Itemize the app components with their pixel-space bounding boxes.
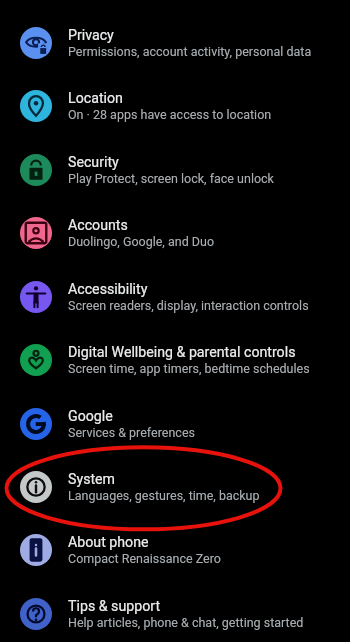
staticText: Location bbox=[68, 90, 123, 107]
staticText: System bbox=[68, 471, 116, 488]
button[interactable]: System bbox=[0, 455, 350, 519]
button[interactable]: Digital Wellbeing & parental controls bbox=[0, 328, 350, 392]
staticText: Duolingo, Google, and Duo bbox=[68, 234, 215, 249]
staticText: Tips & support bbox=[68, 598, 161, 615]
staticText: Compact Renaissance Zero bbox=[68, 551, 221, 566]
staticText: Google bbox=[68, 408, 113, 425]
button[interactable]: Accounts bbox=[0, 201, 350, 265]
button[interactable]: Tips & support bbox=[0, 582, 350, 642]
staticText: Privacy bbox=[68, 27, 114, 44]
staticText: Services & preferences bbox=[68, 425, 195, 440]
button[interactable]: Security bbox=[0, 138, 350, 202]
staticText: Accessibility bbox=[68, 281, 148, 298]
staticText: Help articles, phone & chat, getting sta… bbox=[68, 615, 304, 630]
staticText: Play Protect, screen lock, face unlock bbox=[68, 171, 274, 186]
button[interactable]: About phone bbox=[0, 518, 350, 582]
staticText: Screen time, app timers, bedtime schedul… bbox=[68, 361, 310, 376]
staticText: About phone bbox=[68, 534, 149, 551]
staticText: Digital Wellbeing & parental controls bbox=[68, 344, 296, 361]
button[interactable]: Google bbox=[0, 392, 350, 456]
button[interactable]: Accessibility bbox=[0, 265, 350, 329]
staticText: Languages, gestures, time, backup bbox=[68, 488, 260, 503]
staticText: Accounts bbox=[68, 217, 128, 234]
button[interactable]: Privacy bbox=[0, 11, 350, 75]
staticText: Screen readers, display, interaction con… bbox=[68, 298, 309, 313]
staticText: Permissions, account activity, personal … bbox=[68, 44, 312, 59]
staticText: Security bbox=[68, 154, 119, 171]
button[interactable]: Location bbox=[0, 74, 350, 138]
staticText: On · 28 apps have access to location bbox=[68, 107, 272, 122]
